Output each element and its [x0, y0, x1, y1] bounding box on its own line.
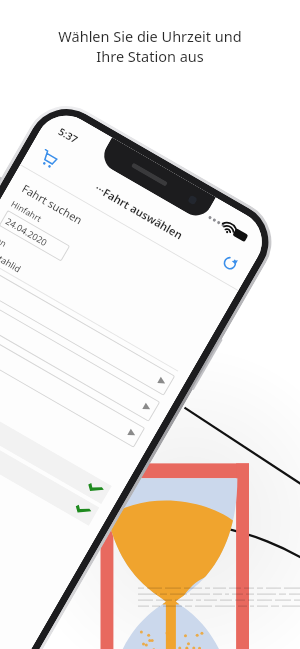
staticText: Hinfahrt: [9, 198, 44, 225]
button[interactable]: [0, 262, 175, 396]
button[interactable]: [0, 288, 160, 422]
staticText: Wählen Sie die Uhrzeit und Ihre Station …: [0, 26, 300, 67]
staticText: Von: [0, 232, 9, 250]
button[interactable]: [0, 314, 145, 448]
staticText: Mattahlid: [0, 244, 24, 275]
button[interactable]: Von: [0, 232, 193, 372]
button[interactable]: Warenkorb: [32, 142, 65, 175]
button[interactable]: Aktualisieren: [215, 248, 245, 278]
button[interactable]: Rückfahrt geholt: [0, 396, 95, 523]
staticText: 24.04.2020: [4, 215, 50, 248]
staticText: Fahrt suchen: [19, 181, 86, 228]
staticText: ···Fahrt auswählen: [93, 180, 186, 243]
staticText: 5:37: [56, 124, 80, 146]
button[interactable]: Hinfahrt geholt: [0, 374, 107, 502]
button[interactable]: Hinfahrt: [0, 198, 212, 339]
